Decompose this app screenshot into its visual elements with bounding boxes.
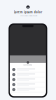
staticText: Lorem ipsum dolor [14, 10, 42, 14]
button[interactable] [10, 77, 46, 82]
button[interactable] [10, 82, 46, 87]
button[interactable] [10, 87, 46, 92]
button[interactable] [10, 72, 46, 77]
staticText: consectetur adipiscing elit [19, 15, 36, 16]
staticText: Section title [23, 64, 32, 66]
button[interactable] [10, 67, 46, 72]
